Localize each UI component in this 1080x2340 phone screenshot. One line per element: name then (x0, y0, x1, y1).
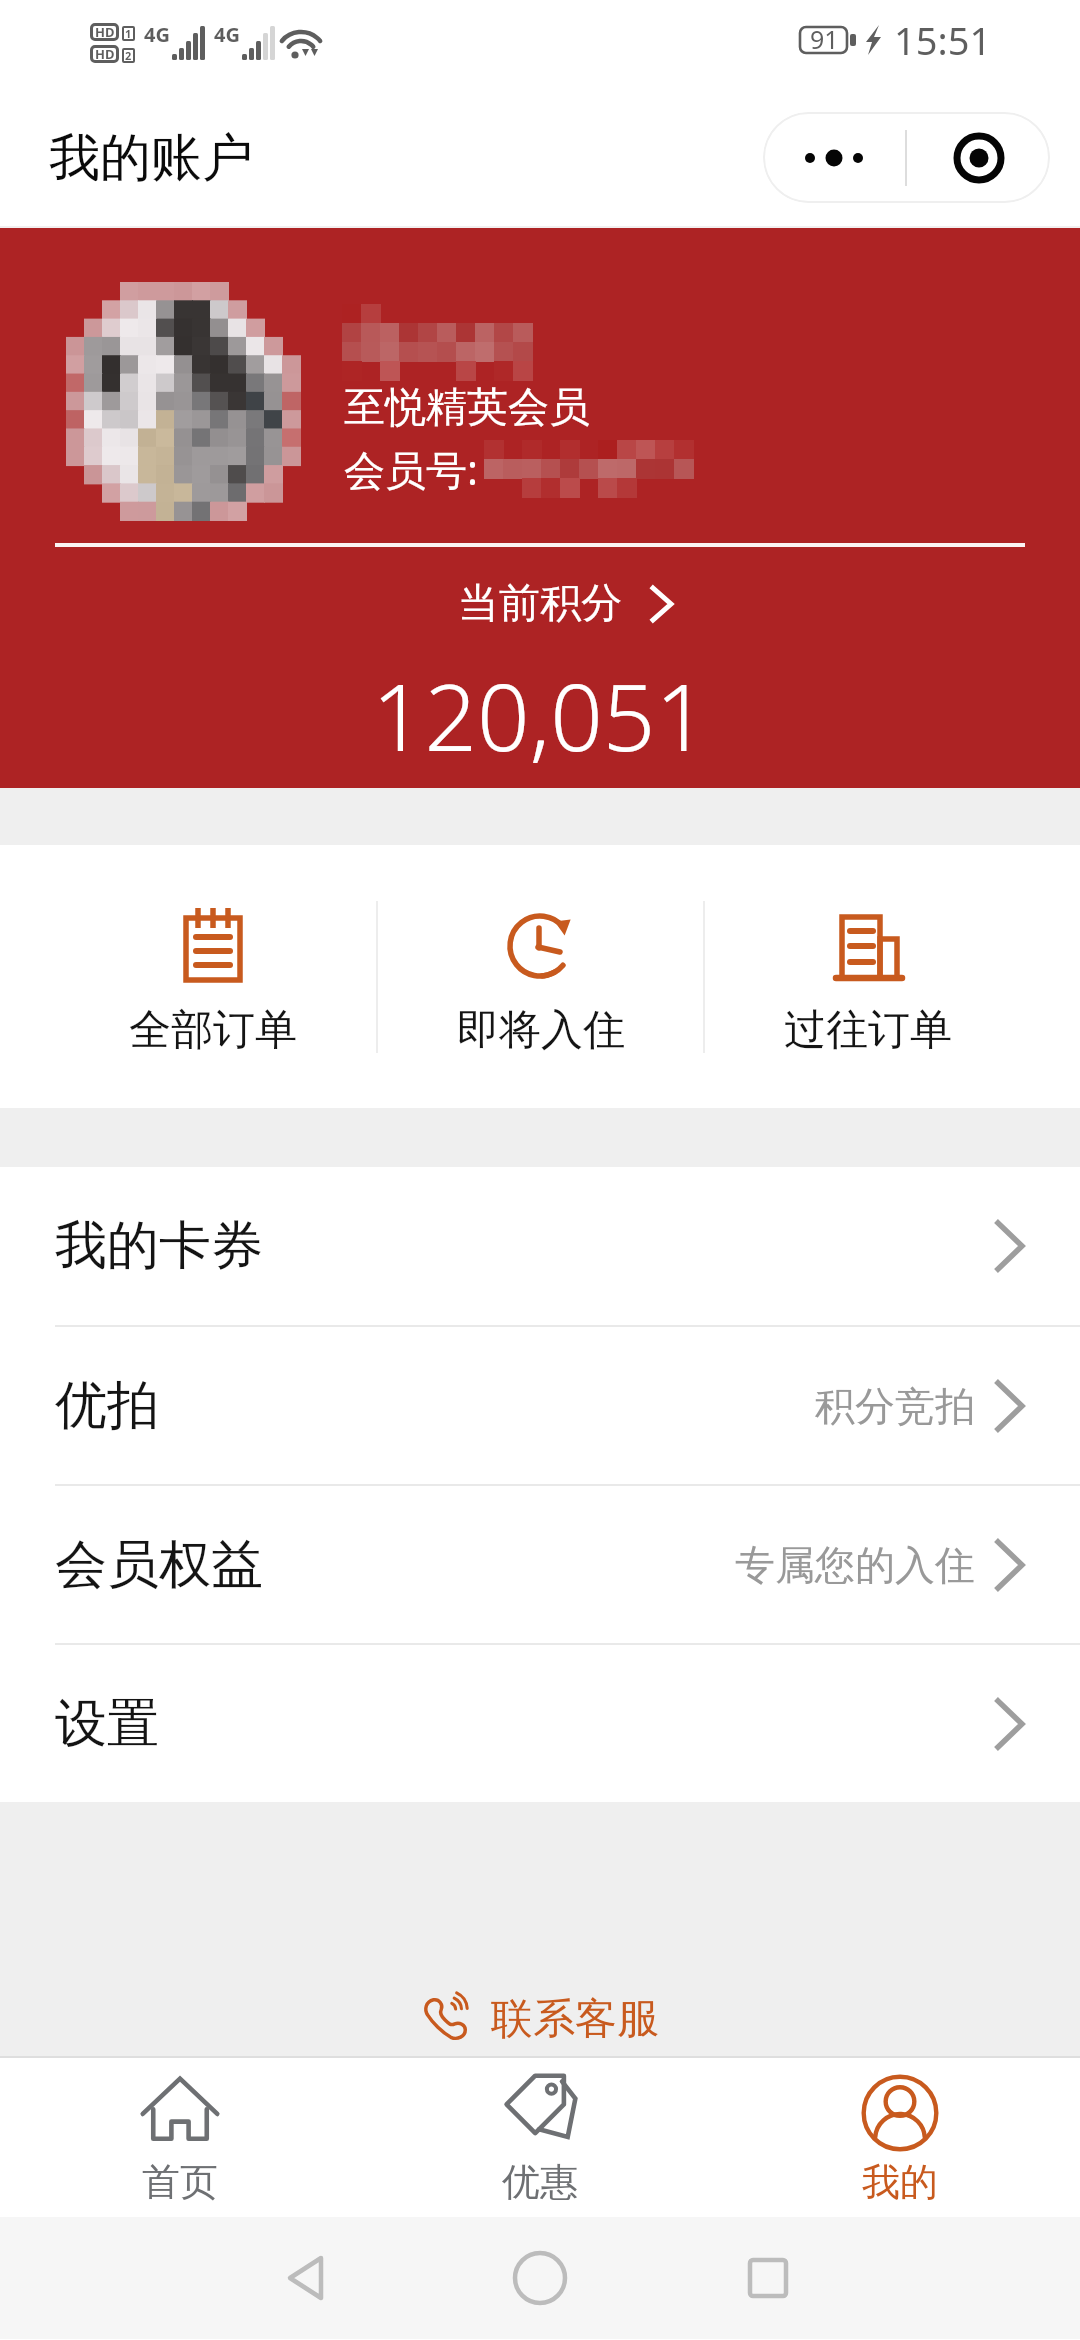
button[interactable]: Recent apps (738, 2248, 798, 2308)
staticText: 即将入住 (457, 1004, 625, 1057)
button[interactable]: 联系客服 (397, 1987, 683, 2052)
button[interactable]: 会员权益 (0, 1486, 1080, 1643)
staticText: 我的 (862, 2158, 938, 2206)
button[interactable]: 首页 (0, 2064, 360, 2212)
button[interactable]: Home (510, 2248, 570, 2308)
button[interactable]: Back (277, 2248, 337, 2308)
staticText: 我的账户 (49, 126, 253, 190)
staticText: 91 (810, 22, 839, 56)
button[interactable]: 全部订单 (50, 878, 376, 1075)
staticText: 设置 (55, 1691, 159, 1757)
staticText: 2 (125, 48, 132, 63)
staticText: 专属您的入住 (735, 1540, 975, 1590)
button[interactable]: Close mini program (907, 112, 1050, 203)
staticText: 会员权益 (55, 1532, 263, 1598)
button[interactable]: 设置 (0, 1645, 1080, 1802)
button[interactable]: 我的卡券 (0, 1167, 1080, 1325)
staticText: 优惠 (502, 2158, 578, 2206)
staticText: 4G (214, 21, 240, 48)
staticText: 过往订单 (784, 1004, 952, 1057)
staticText: 优拍 (55, 1373, 159, 1439)
staticText: 我的卡券 (55, 1213, 263, 1279)
staticText: HD (95, 45, 115, 63)
staticText: 当前积分 (458, 578, 622, 630)
button[interactable]: 优惠 (360, 2064, 720, 2212)
staticText: 4G (144, 21, 170, 48)
staticText: 15:51 (894, 14, 992, 66)
staticText: 120,051 (372, 653, 708, 778)
staticText: 全部订单 (129, 1004, 297, 1057)
staticText: 联系客服 (491, 1993, 659, 2046)
staticText: HD (95, 23, 115, 41)
staticText: 1 (125, 26, 132, 41)
staticText: 会员号: (344, 441, 478, 497)
button[interactable]: 过往订单 (705, 878, 1030, 1075)
button[interactable]: 优拍 (0, 1327, 1080, 1484)
staticText: 至悦精英会员 (344, 382, 590, 434)
button[interactable]: 我的 (720, 2064, 1080, 2212)
staticText: 积分竞拍 (815, 1381, 975, 1431)
staticText: 首页 (142, 2158, 218, 2206)
button[interactable]: 即将入住 (378, 878, 703, 1075)
button[interactable]: More options (763, 112, 905, 203)
button[interactable]: 当前积分 (448, 572, 686, 636)
